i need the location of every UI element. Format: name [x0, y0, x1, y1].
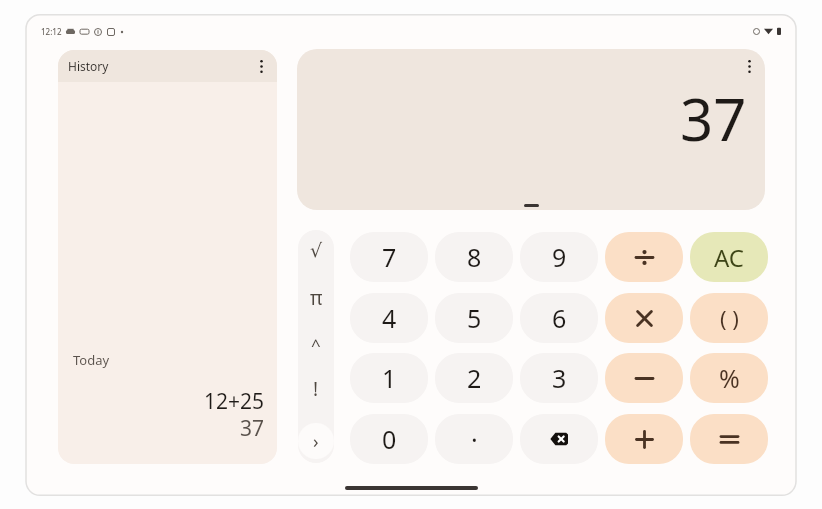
button[interactable]: 1 — [350, 353, 428, 403]
staticText: 6 — [552, 301, 567, 335]
button[interactable]: ( ) — [690, 293, 768, 343]
button[interactable]: Add — [605, 414, 683, 464]
staticText: 0 — [382, 422, 397, 456]
other: Equals — [721, 431, 738, 448]
staticText: ( ) — [720, 303, 739, 333]
other: Multiply — [636, 310, 653, 327]
button[interactable]: Expand functions — [298, 423, 334, 459]
button[interactable]: 5 — [435, 293, 513, 343]
staticText: 1 — [382, 361, 397, 395]
other: Backspace — [550, 432, 568, 446]
button[interactable]: Display options — [739, 56, 759, 76]
staticText: √ — [310, 239, 323, 261]
button[interactable]: 2 — [435, 353, 513, 403]
staticText: History — [68, 58, 109, 74]
button[interactable]: · — [435, 414, 513, 464]
staticText: 3 — [552, 361, 567, 395]
button[interactable]: Backspace — [520, 414, 598, 464]
staticText: 4 — [382, 301, 397, 335]
button[interactable]: Equals — [690, 414, 768, 464]
staticText: › — [313, 429, 319, 454]
staticText: % — [719, 361, 740, 395]
staticText: 7 — [382, 240, 397, 274]
staticText: 5 — [467, 301, 482, 335]
staticText: AC — [714, 241, 745, 274]
button[interactable]: π — [298, 280, 334, 316]
staticText: 9 — [552, 240, 567, 274]
other: Subtract — [636, 370, 653, 387]
button[interactable]: 0 — [350, 414, 428, 464]
staticText: 12+25 — [58, 387, 264, 416]
button[interactable]: Multiply — [605, 293, 683, 343]
staticText: Today — [73, 351, 110, 369]
button[interactable]: History — [58, 50, 277, 82]
staticText: · — [471, 422, 478, 456]
button[interactable]: 7 — [350, 232, 428, 282]
staticText: 2 — [467, 361, 482, 395]
button[interactable]: 4 — [350, 293, 428, 343]
button[interactable]: 3 — [520, 353, 598, 403]
other: Add — [636, 431, 653, 448]
staticText: 8 — [467, 240, 482, 274]
button[interactable]: Subtract — [605, 353, 683, 403]
staticText: π — [310, 285, 323, 311]
button[interactable]: % — [690, 353, 768, 403]
button[interactable]: 9 — [520, 232, 598, 282]
button[interactable]: 12+25 — [58, 387, 277, 439]
staticText: 12:12 — [41, 26, 62, 37]
button[interactable]: √ — [298, 232, 334, 268]
other: Divide — [636, 249, 653, 266]
button[interactable]: ! — [298, 371, 334, 407]
button[interactable]: AC — [690, 232, 768, 282]
staticText: ^ — [311, 333, 321, 356]
button[interactable]: 8 — [435, 232, 513, 282]
button[interactable]: Resize display — [524, 204, 539, 207]
staticText: 37 — [680, 79, 747, 158]
button[interactable]: ^ — [298, 326, 334, 362]
button[interactable]: Divide — [605, 232, 683, 282]
button[interactable]: 6 — [520, 293, 598, 343]
button[interactable]: History options — [251, 56, 271, 76]
staticText: 37 — [58, 414, 264, 439]
staticText: ! — [313, 376, 319, 402]
